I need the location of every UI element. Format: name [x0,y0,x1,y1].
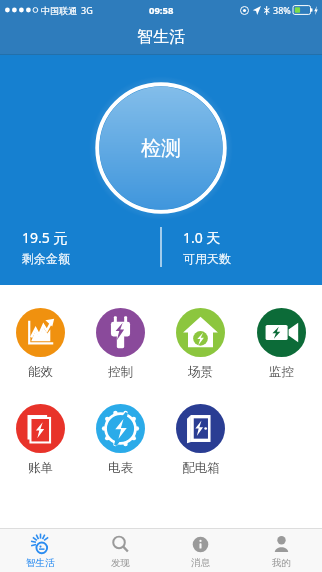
staticText: 配电箱 [182,460,220,476]
staticText: 可用天数 [183,251,231,266]
staticText: 38% [273,4,291,16]
staticText: 中国联通 [41,5,77,16]
button[interactable]: 账单 [0,402,80,478]
staticText: 账单 [28,460,53,476]
button[interactable]: 控制 [80,306,160,382]
button[interactable]: 智生活 [0,529,80,572]
staticText: 剩余金额 [22,251,70,266]
button[interactable]: 监控 [241,306,322,382]
button[interactable]: 电表 [80,402,160,478]
staticText: 智生活 [137,27,185,47]
staticText: 电表 [108,460,133,476]
staticText: 19.5 元 [22,228,68,247]
staticText: 控制 [108,364,133,380]
staticText: 智生活 [26,557,55,569]
staticText: 能效 [28,364,53,380]
staticText: 3G [81,4,93,16]
staticText: 检测 [141,136,181,161]
button[interactable]: 能效 [0,306,80,382]
staticText: 监控 [269,364,294,380]
button[interactable]: 消息 [160,529,241,572]
button[interactable]: 发现 [80,529,160,572]
staticText: 消息 [191,557,210,569]
staticText: 场景 [188,364,213,380]
staticText: 发现 [111,557,130,569]
staticText: 09:58 [149,4,174,17]
staticText: 1.0 天 [183,228,221,247]
staticText: 我的 [272,557,291,569]
button[interactable]: 配电箱 [160,402,241,478]
button[interactable]: 我的 [241,529,322,572]
button[interactable]: 检测 [89,76,233,220]
button[interactable]: 场景 [160,306,241,382]
